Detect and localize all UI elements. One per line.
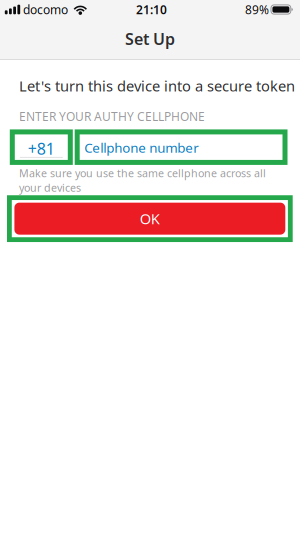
staticText: OK	[140, 209, 160, 228]
staticText: Let's turn this device into a secure tok…	[19, 76, 295, 95]
button[interactable]: OK	[7, 195, 293, 242]
staticText: docomo	[23, 1, 68, 17]
staticText: 21:10	[136, 1, 167, 17]
staticText: Make sure you use the same cellphone acr…	[19, 166, 266, 195]
staticText: +81	[28, 138, 55, 159]
button[interactable]: Cellphone number	[75, 129, 287, 165]
staticText: ENTER YOUR AUTHY CELLPHONE	[19, 108, 205, 124]
staticText: Cellphone number	[84, 139, 199, 156]
button[interactable]: Country code, +81	[10, 129, 73, 165]
staticText: 89%	[245, 1, 269, 17]
staticText: Set Up	[125, 28, 175, 49]
